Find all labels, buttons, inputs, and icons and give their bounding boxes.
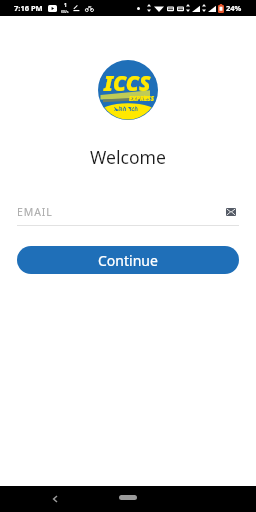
staticText: EMAIL [17, 205, 226, 219]
staticText: EXPRESS [129, 95, 154, 103]
staticText: 1 [64, 2, 67, 9]
staticText: 24% [226, 3, 242, 13]
button[interactable]: Home [111, 490, 145, 504]
staticText: ኤክስ ፕረስ [114, 105, 138, 113]
button[interactable]: EMAIL [17, 205, 239, 226]
button[interactable]: Continue [17, 246, 239, 274]
staticText: Welcome [0, 145, 256, 169]
staticText: 7:16 PM [14, 3, 43, 13]
button[interactable]: Back [44, 488, 66, 510]
staticText: ICCS [104, 69, 151, 98]
staticText: Continue [98, 251, 158, 270]
staticText: KB/s [61, 9, 69, 14]
